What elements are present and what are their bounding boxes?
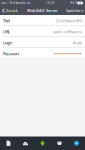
button[interactable]: Zurück	[0, 6, 20, 15]
staticText: nadrv.selfhost.eu	[53, 29, 82, 34]
button[interactable]: Speichern	[64, 6, 85, 15]
staticText: Passwort	[3, 51, 19, 56]
staticText: WebDAV Server	[27, 8, 58, 13]
staticText: URL	[3, 29, 10, 34]
staticText: Speichern	[66, 8, 83, 13]
staticText: Telekom.de	[9, 1, 26, 5]
button[interactable]: Übertragungen	[51, 137, 68, 150]
button[interactable]: Browser	[68, 137, 85, 150]
staticText: Login	[3, 40, 12, 45]
button[interactable]: Dateien	[0, 137, 17, 150]
button[interactable]: Cloud	[17, 137, 34, 150]
staticText: Andy	[73, 40, 82, 45]
staticText: 13:52	[46, 1, 55, 5]
staticText: Zurück	[6, 8, 18, 13]
staticText: DiskStation WV	[56, 18, 82, 23]
staticText: Titel	[3, 18, 10, 23]
staticText: ••••••••••••••	[54, 51, 82, 56]
staticText: 84 %	[71, 1, 78, 5]
staticText: LTE	[26, 1, 30, 5]
button[interactable]: Server	[34, 137, 51, 150]
